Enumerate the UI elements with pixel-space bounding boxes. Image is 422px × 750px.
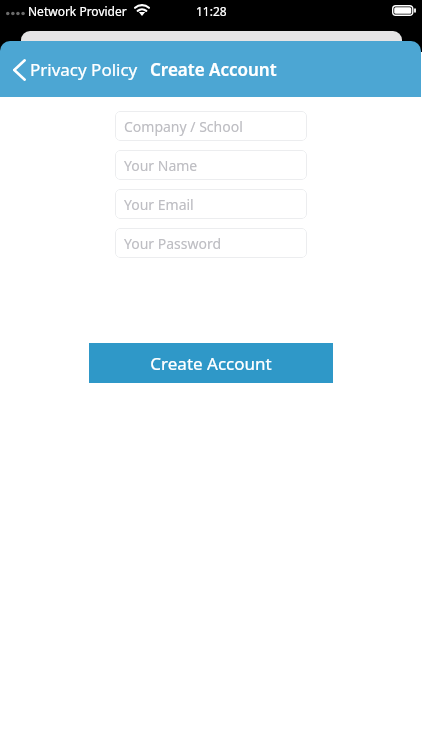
button[interactable]: Your Email <box>115 189 307 219</box>
staticText: 11:28 <box>196 3 227 19</box>
button[interactable]: Company / School <box>115 111 307 141</box>
button[interactable]: Back <box>13 58 146 81</box>
staticText: Your Email <box>124 195 194 214</box>
staticText: Create Account <box>150 352 272 375</box>
other: Back <box>13 59 26 81</box>
button[interactable]: Create Account <box>89 343 333 383</box>
button[interactable]: Your Password <box>115 228 307 258</box>
button[interactable]: Your Name <box>115 150 307 180</box>
staticText: Network Provider <box>28 3 127 19</box>
staticText: Privacy Policy <box>30 58 138 81</box>
staticText: Your Password <box>124 234 222 253</box>
staticText: Your Name <box>124 156 198 175</box>
staticText: Create Account <box>150 58 277 81</box>
staticText: Company / School <box>124 117 243 136</box>
